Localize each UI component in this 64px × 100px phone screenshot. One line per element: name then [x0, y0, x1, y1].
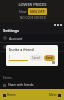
button[interactable]: Profile: [0, 43, 64, 51]
staticText: Share with friends: [8, 83, 34, 87]
staticText: LOWER PRICES: [18, 2, 47, 7]
button[interactable]: Cancel: [30, 55, 43, 61]
button[interactable]: Home: [3, 93, 16, 97]
button[interactable]: More: [49, 93, 61, 97]
staticText: Cancel: [32, 56, 41, 60]
staticText: Settings: [3, 28, 19, 33]
staticText: Profile: [9, 45, 20, 50]
staticText: Send: [46, 56, 53, 60]
staticText: |: [9, 55, 11, 59]
button[interactable]: Send: [44, 55, 55, 61]
button[interactable]: Account: [0, 34, 64, 42]
staticText: Terms: [3, 76, 12, 80]
staticText: NO CODE NEEDED: [20, 16, 46, 20]
button[interactable]: Share with friends: [3, 83, 61, 87]
staticText: More: [49, 93, 57, 97]
staticText: Account: [9, 36, 23, 41]
staticText: Now: [19, 9, 28, 14]
staticText: 50% OFF: [30, 9, 45, 14]
staticText: Invite a friend: [9, 47, 34, 52]
staticText: Home: [7, 93, 16, 97]
